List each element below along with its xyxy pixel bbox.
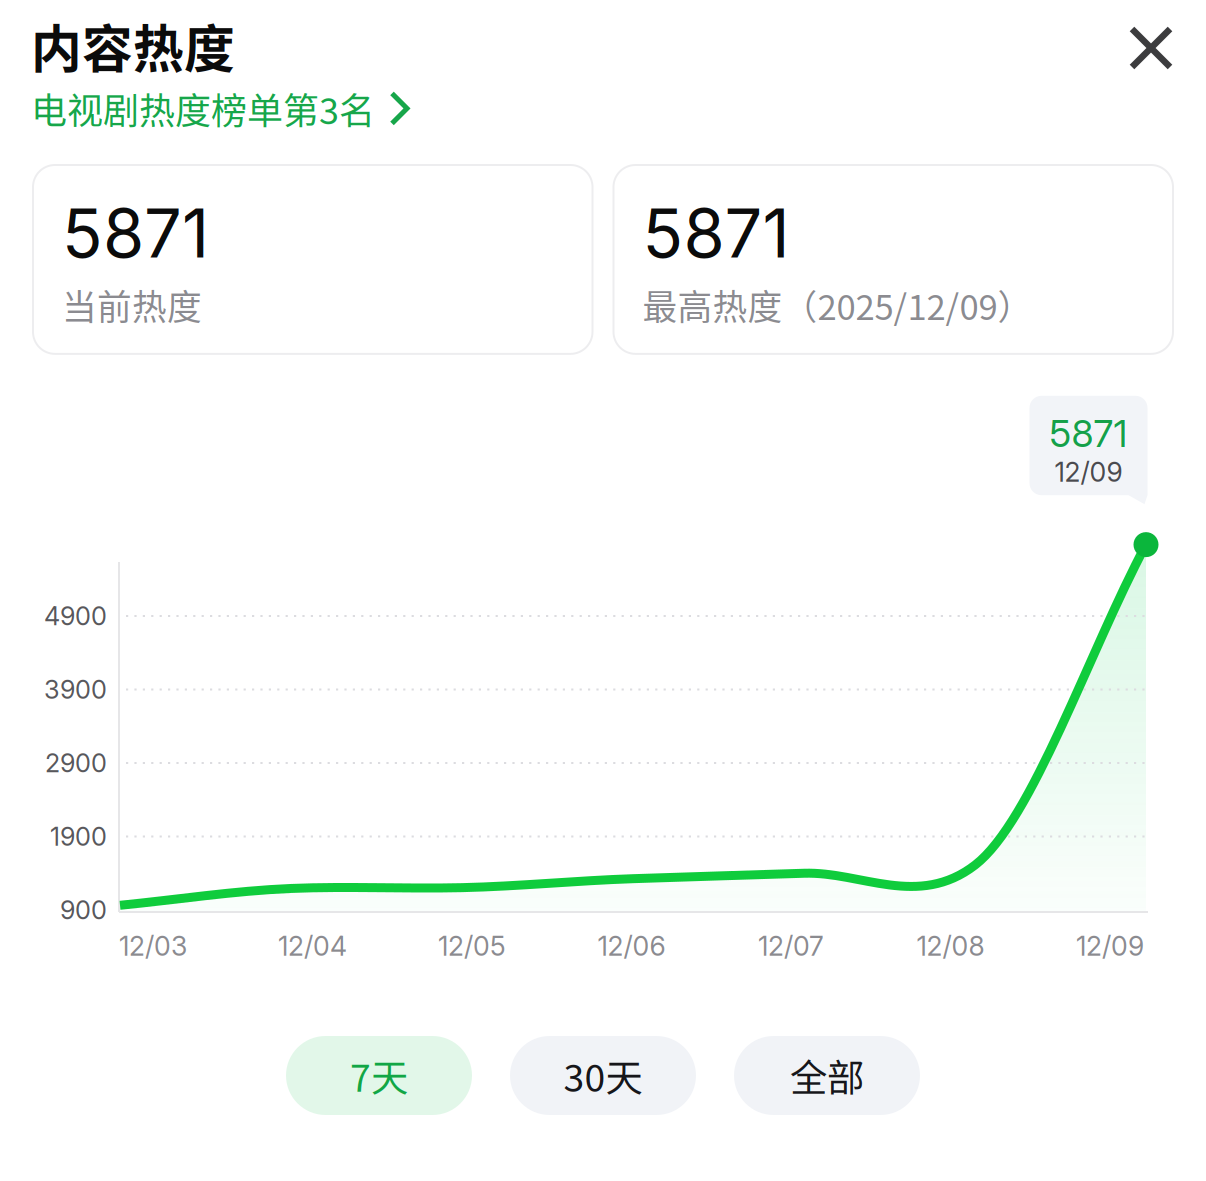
button[interactable]: 7天 bbox=[286, 1036, 472, 1115]
button[interactable]: 全部 bbox=[734, 1036, 920, 1115]
staticText: 12/05 bbox=[438, 930, 506, 962]
staticText: 电视剧热度榜单第3名 bbox=[31, 82, 375, 134]
staticText: 5871 bbox=[62, 193, 209, 274]
staticText: 1900 bbox=[50, 821, 107, 852]
staticText: 12/08 bbox=[916, 930, 984, 962]
staticText: 900 bbox=[60, 895, 107, 925]
staticText: 3900 bbox=[44, 674, 107, 705]
staticText: 12/03 bbox=[119, 930, 187, 962]
staticText: 5871 bbox=[642, 193, 789, 274]
button[interactable]: 电视剧热度榜单第3名 bbox=[31, 82, 410, 134]
staticText: 12/09 bbox=[1076, 930, 1144, 962]
button[interactable]: Close bbox=[1112, 9, 1190, 79]
staticText: 当前热度 bbox=[62, 280, 202, 330]
staticText: 30天 bbox=[563, 1048, 642, 1103]
staticText: 全部 bbox=[790, 1048, 864, 1103]
staticText: 7天 bbox=[350, 1048, 408, 1103]
staticText: 12/09 bbox=[1054, 456, 1122, 488]
staticText: 内容热度 bbox=[31, 9, 235, 82]
staticText: 12/06 bbox=[597, 930, 665, 962]
staticText: 2900 bbox=[45, 748, 107, 778]
staticText: 5871 bbox=[1049, 411, 1127, 456]
staticText: 最高热度（2025/12/09） bbox=[642, 280, 1032, 330]
staticText: 12/07 bbox=[758, 930, 824, 962]
staticText: 12/04 bbox=[278, 930, 347, 962]
staticText: 4900 bbox=[44, 601, 107, 631]
button[interactable]: 30天 bbox=[510, 1036, 696, 1115]
